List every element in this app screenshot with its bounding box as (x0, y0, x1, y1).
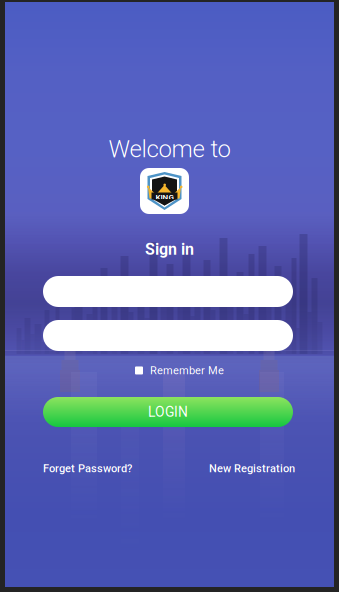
staticText: Sign in (145, 240, 194, 259)
button[interactable]: Remember Me (135, 364, 224, 377)
staticText: LOGIN (148, 404, 188, 420)
staticText: KING (155, 193, 173, 202)
button[interactable]: Forget Password? (43, 462, 132, 475)
button[interactable]: New Registration (209, 462, 295, 475)
staticText: New Registration (209, 462, 295, 475)
button[interactable]: LOGIN (43, 397, 293, 427)
staticText: Forget Password? (43, 462, 132, 475)
staticText: Welcome to (108, 135, 230, 163)
staticText: Remember Me (150, 364, 224, 377)
